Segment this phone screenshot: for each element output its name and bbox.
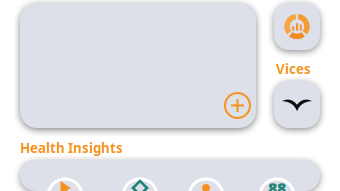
- button[interactable]: Bird: [274, 81, 320, 128]
- button[interactable]: [20, 3, 256, 128]
- staticText: Vices: [276, 60, 311, 78]
- button[interactable]: Statistics: [274, 3, 320, 50]
- staticText: 88: [268, 177, 286, 191]
- staticText: Health Insights: [20, 139, 123, 157]
